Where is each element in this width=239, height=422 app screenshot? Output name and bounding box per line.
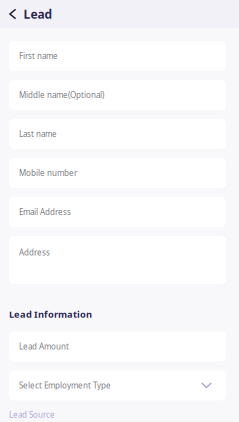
button[interactable]: Lead Amount [9,331,226,361]
staticText: Last name [19,129,57,139]
staticText: Lead Source [9,409,55,420]
staticText: Address [19,247,50,258]
staticText: First name [19,51,58,61]
button[interactable]: Mobile number [9,158,226,188]
staticText: Select Employment Type [19,380,111,391]
staticText: Middle name(Optional) [19,90,104,100]
staticText: Mobile number [19,168,77,178]
button[interactable]: First name [9,41,226,71]
button[interactable]: Select Employment Type [9,370,226,400]
staticText: Email Address [19,207,71,217]
button[interactable]: Middle name(Optional) [9,80,226,110]
button[interactable]: Address [9,236,226,284]
staticText: Lead Information [9,308,92,320]
button[interactable]: Email Address [9,197,226,227]
button[interactable]: Last name [9,119,226,149]
button[interactable]: Back [0,0,23,27]
staticText: Lead [23,6,52,22]
staticText: Lead Amount [19,341,69,352]
